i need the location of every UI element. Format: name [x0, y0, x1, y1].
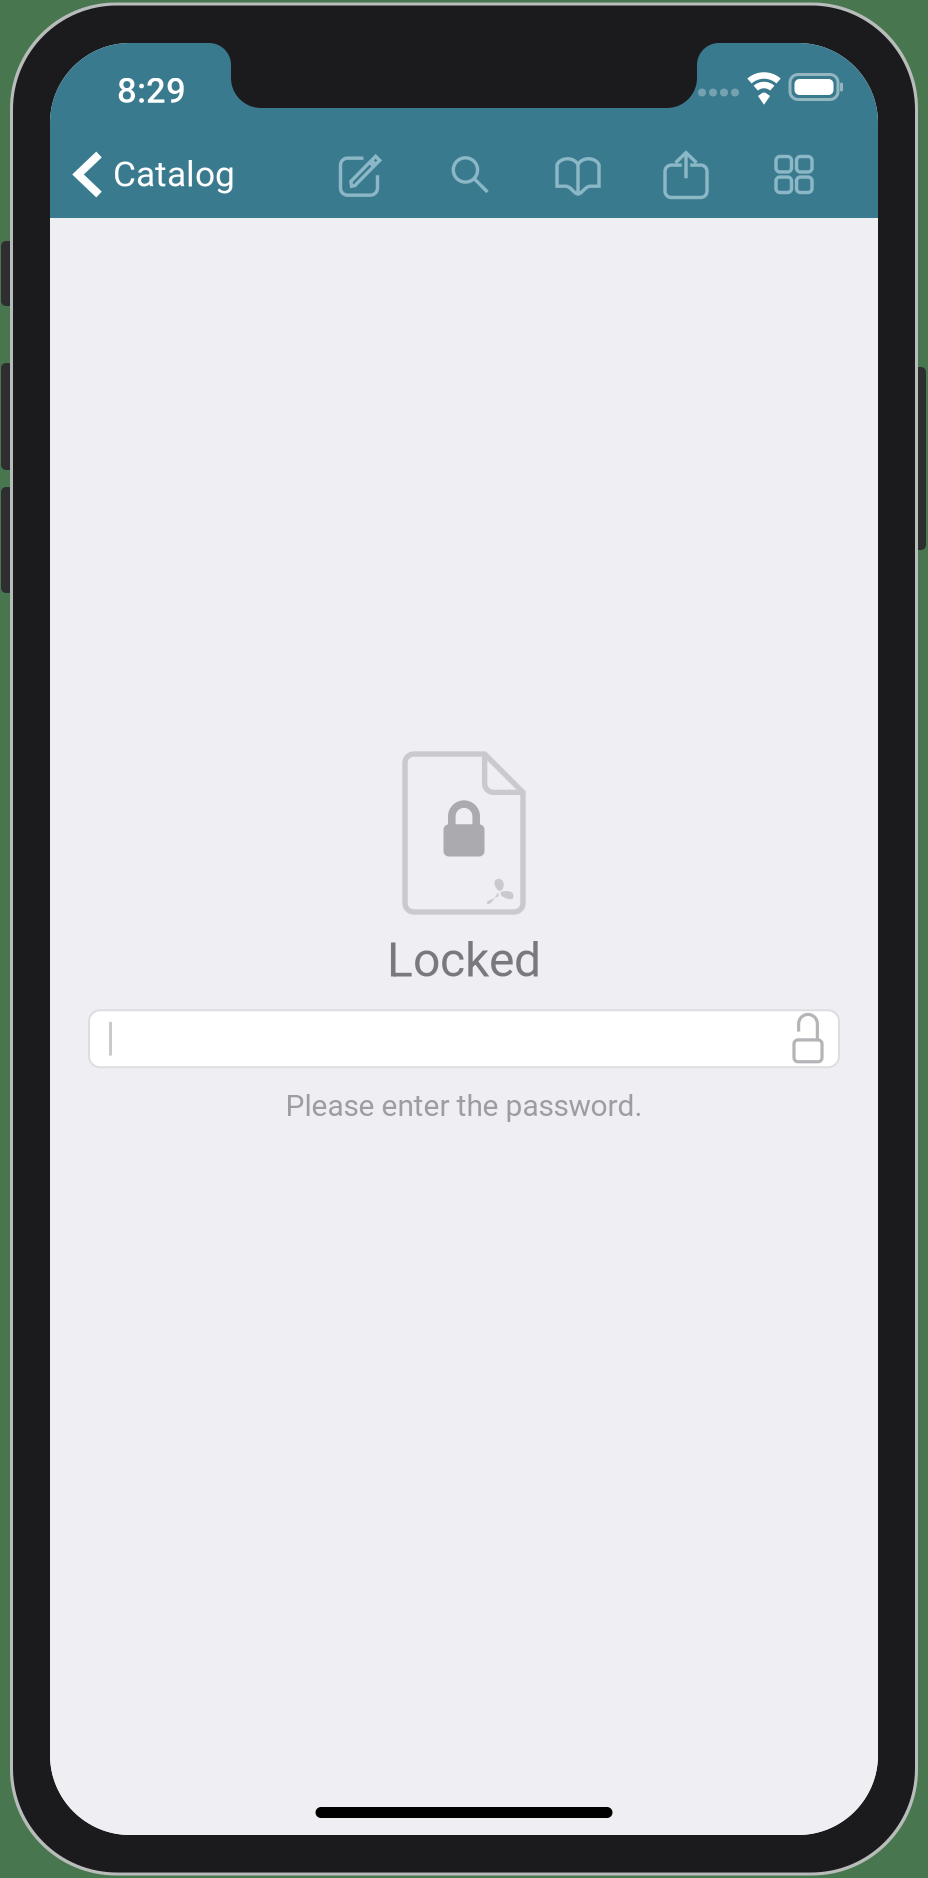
- staticText: Please enter the password.: [285, 1088, 642, 1123]
- button[interactable]: Search: [416, 130, 524, 218]
- staticText: Catalog: [113, 154, 235, 195]
- button[interactable]: Catalog: [78, 140, 245, 209]
- staticText: 8:29: [117, 71, 186, 111]
- button[interactable]: Share: [632, 130, 740, 218]
- button[interactable]: Page thumbnails: [740, 130, 848, 218]
- button[interactable]: Reading mode: [524, 130, 632, 218]
- button[interactable]: Password: [89, 1010, 839, 1067]
- staticText: Locked: [387, 932, 541, 988]
- button[interactable]: Annotate: [308, 130, 416, 218]
